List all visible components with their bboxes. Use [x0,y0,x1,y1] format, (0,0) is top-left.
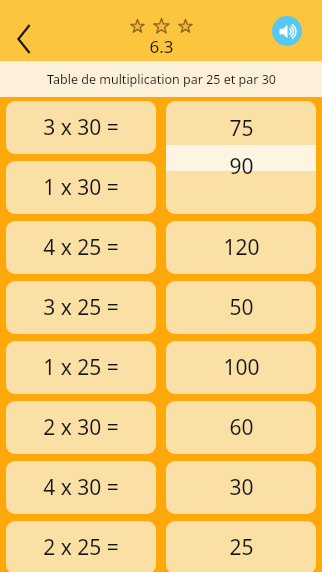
staticText: 4 x 25 = [43,233,119,262]
button[interactable]: 1 x 30 = [6,161,156,214]
button[interactable]: 2 x 30 = [6,401,156,454]
button[interactable]: 4 x 30 = [6,461,156,514]
button[interactable]: 25 [166,521,316,572]
button[interactable]: Back [0,16,48,61]
staticText: Table de multiplication par 25 et par 30 [47,71,276,88]
staticText: 120 [223,233,260,262]
staticText: 90 [229,152,254,181]
staticText: 6.3 [149,35,174,58]
button[interactable]: 60 [166,401,316,454]
button[interactable]: 4 x 25 = [6,221,156,274]
staticText: 1 x 30 = [43,173,119,202]
button[interactable]: 3 x 30 = [6,101,156,154]
staticText: 25 [229,533,254,562]
staticText: 4 x 30 = [43,473,119,502]
button[interactable]: 120 [166,221,316,274]
staticText: 3 x 30 = [43,113,119,142]
button[interactable]: 3 x 25 = [6,281,156,334]
button[interactable]: Sound [272,16,302,46]
button[interactable]: 100 [166,341,316,394]
button[interactable]: 50 [166,281,316,334]
staticText: 30 [229,473,254,502]
staticText: 75 [229,114,254,143]
staticText: 100 [223,353,260,382]
staticText: 2 x 25 = [43,533,119,562]
button[interactable]: 2 x 25 = [6,521,156,572]
button[interactable]: 75 [166,101,316,214]
staticText: 60 [229,413,254,442]
staticText: 1 x 25 = [43,353,119,382]
staticText: 50 [229,293,254,322]
staticText: 2 x 30 = [43,413,119,442]
button[interactable]: 30 [166,461,316,514]
button[interactable]: 1 x 25 = [6,341,156,394]
staticText: 3 x 25 = [43,293,119,322]
